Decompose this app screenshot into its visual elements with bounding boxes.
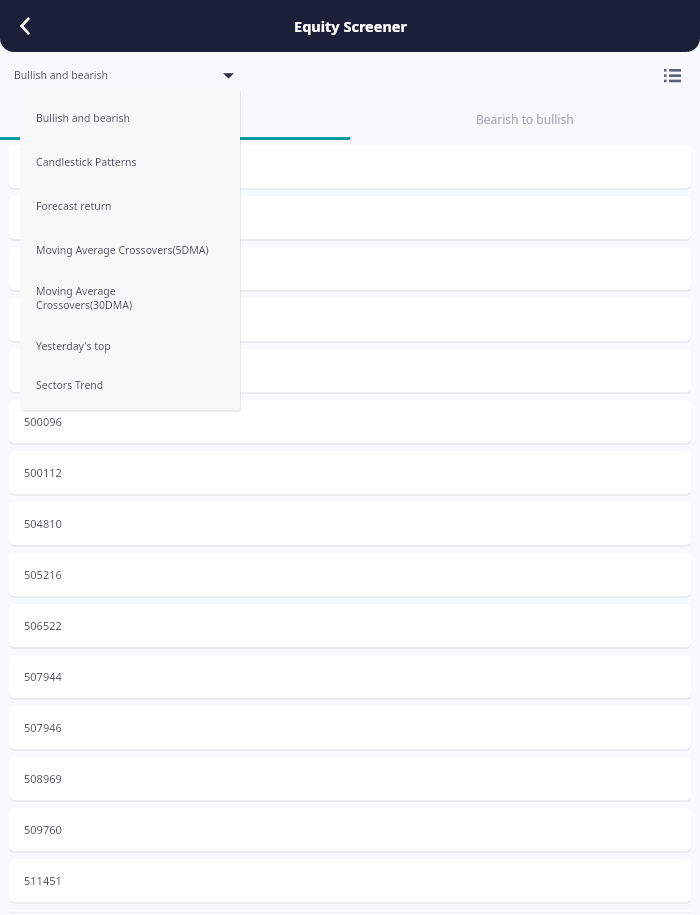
button[interactable]: 509760	[9, 808, 691, 851]
staticText: 500112	[24, 465, 62, 480]
staticText: 508969	[24, 771, 62, 786]
staticText: 507944	[24, 669, 62, 684]
staticText: 509760	[24, 822, 62, 837]
staticText: Candlestick Patterns	[36, 155, 137, 169]
button[interactable]: Bullish and bearish	[14, 52, 234, 98]
staticText: Moving Average Crossovers(30DMA)	[36, 284, 133, 312]
button[interactable]: 504810	[9, 502, 691, 545]
button[interactable]: Bearish to bullish	[350, 98, 700, 140]
button[interactable]: 500112	[9, 451, 691, 494]
button[interactable]: Bullish and bearish	[20, 96, 240, 140]
button[interactable]: 507946	[9, 706, 691, 749]
button[interactable]: 505216	[9, 553, 691, 596]
button[interactable]: Bullish to bearish	[0, 98, 350, 140]
staticText: 506522	[24, 618, 62, 633]
staticText: 507946	[24, 720, 62, 735]
button[interactable]: Candlestick Patterns	[20, 140, 240, 184]
button[interactable]: List view	[654, 57, 690, 93]
button[interactable]: Moving Average Crossovers(30DMA)	[20, 272, 240, 324]
button[interactable]: 500096	[9, 400, 691, 443]
button[interactable]: 500002	[9, 145, 691, 188]
button[interactable]: 500008	[9, 196, 691, 239]
staticText: Moving Average Crossovers(5DMA)	[36, 243, 209, 257]
staticText: 500096	[24, 414, 62, 429]
staticText: Bullish and bearish	[14, 68, 109, 82]
button[interactable]: 511451	[9, 859, 691, 902]
button[interactable]: Back	[4, 4, 48, 48]
staticText: 500002	[24, 159, 62, 174]
staticText: Yesterday's top	[36, 339, 111, 353]
staticText: Sectors Trend	[36, 378, 104, 392]
button[interactable]: 500031	[9, 298, 691, 341]
staticText: Bearish to bullish	[476, 111, 574, 127]
button[interactable]: 506522	[9, 604, 691, 647]
staticText: Bullish to bearish	[126, 111, 224, 127]
button[interactable]: Yesterday's top	[20, 324, 240, 368]
button[interactable]: 508969	[9, 757, 691, 800]
button[interactable]: 500020	[9, 247, 691, 290]
button[interactable]: 500043	[9, 349, 691, 392]
staticText: Equity Screener	[294, 16, 407, 36]
button[interactable]: 507944	[9, 655, 691, 698]
staticText: Bullish and bearish	[36, 111, 131, 125]
button[interactable]: Sectors Trend	[20, 368, 240, 402]
staticText: Forecast return	[36, 199, 112, 213]
staticText: 504810	[24, 516, 62, 531]
staticText: 511451	[24, 873, 62, 888]
staticText: 505216	[24, 567, 62, 582]
button[interactable]: Moving Average Crossovers(5DMA)	[20, 228, 240, 272]
button[interactable]: Forecast return	[20, 184, 240, 228]
